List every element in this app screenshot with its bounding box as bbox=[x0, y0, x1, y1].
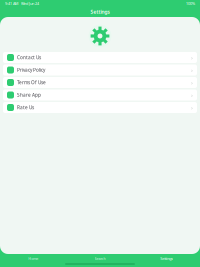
staticText: › bbox=[191, 66, 193, 74]
button[interactable]: Contact Us bbox=[3, 52, 197, 63]
staticText: Share App bbox=[17, 92, 41, 98]
staticText: › bbox=[191, 53, 193, 62]
button[interactable]: Settings bbox=[133, 254, 200, 263]
button[interactable]: Share App bbox=[3, 89, 197, 100]
staticText: Contact Us bbox=[17, 54, 41, 61]
staticText: › bbox=[191, 103, 193, 112]
staticText: Terms Of Use bbox=[17, 79, 46, 86]
staticText: Settings bbox=[90, 9, 109, 15]
button[interactable]: Privacy Policy bbox=[3, 64, 197, 75]
staticText: Home bbox=[28, 256, 38, 261]
staticText: › bbox=[191, 78, 193, 87]
staticText: 100% bbox=[186, 1, 195, 6]
staticText: Wed Jun 24 bbox=[21, 1, 39, 6]
staticText: › bbox=[191, 91, 193, 99]
staticText: 9:41 AM bbox=[5, 1, 18, 6]
button[interactable]: Rate Us bbox=[3, 102, 197, 113]
button[interactable]: Search bbox=[67, 254, 133, 263]
button[interactable]: Home bbox=[0, 254, 67, 263]
staticText: Search bbox=[94, 256, 105, 261]
button[interactable]: Terms Of Use bbox=[3, 77, 197, 88]
staticText: Privacy Policy bbox=[17, 67, 45, 73]
staticText: Rate Us bbox=[17, 104, 34, 111]
staticText: Settings bbox=[160, 256, 173, 261]
